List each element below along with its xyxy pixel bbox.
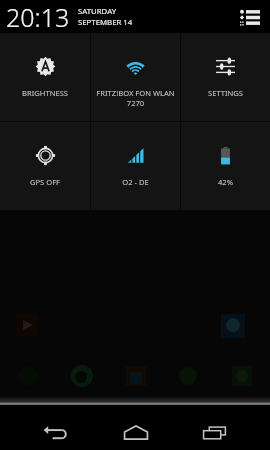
staticText: FRITZ!BOX FON WLAN 7270	[91, 88, 180, 108]
staticText: BRIGHTNESS	[0, 88, 90, 98]
button[interactable]: SETTINGS	[181, 33, 270, 121]
staticText: SEPTEMBER 14	[78, 17, 133, 28]
button[interactable]: Quick settings list	[237, 4, 263, 30]
staticText: SETTINGS	[181, 88, 270, 98]
staticText: O2 - DE	[91, 177, 180, 187]
button[interactable]: 42%	[181, 122, 270, 210]
staticText: 20:13	[6, 0, 70, 33]
button[interactable]: FRITZ!BOX FON WLAN 7270	[91, 33, 180, 121]
staticText: SATURDAY	[78, 6, 117, 17]
button[interactable]: Recents	[185, 405, 245, 450]
button[interactable]: Home	[106, 405, 166, 450]
button[interactable]: GPS OFF	[0, 122, 90, 210]
button[interactable]: BRIGHTNESS	[0, 33, 90, 121]
staticText: 42%	[181, 177, 270, 187]
button[interactable]: Back	[26, 405, 86, 450]
button[interactable]: O2 - DE	[91, 122, 180, 210]
staticText: GPS OFF	[0, 177, 90, 187]
